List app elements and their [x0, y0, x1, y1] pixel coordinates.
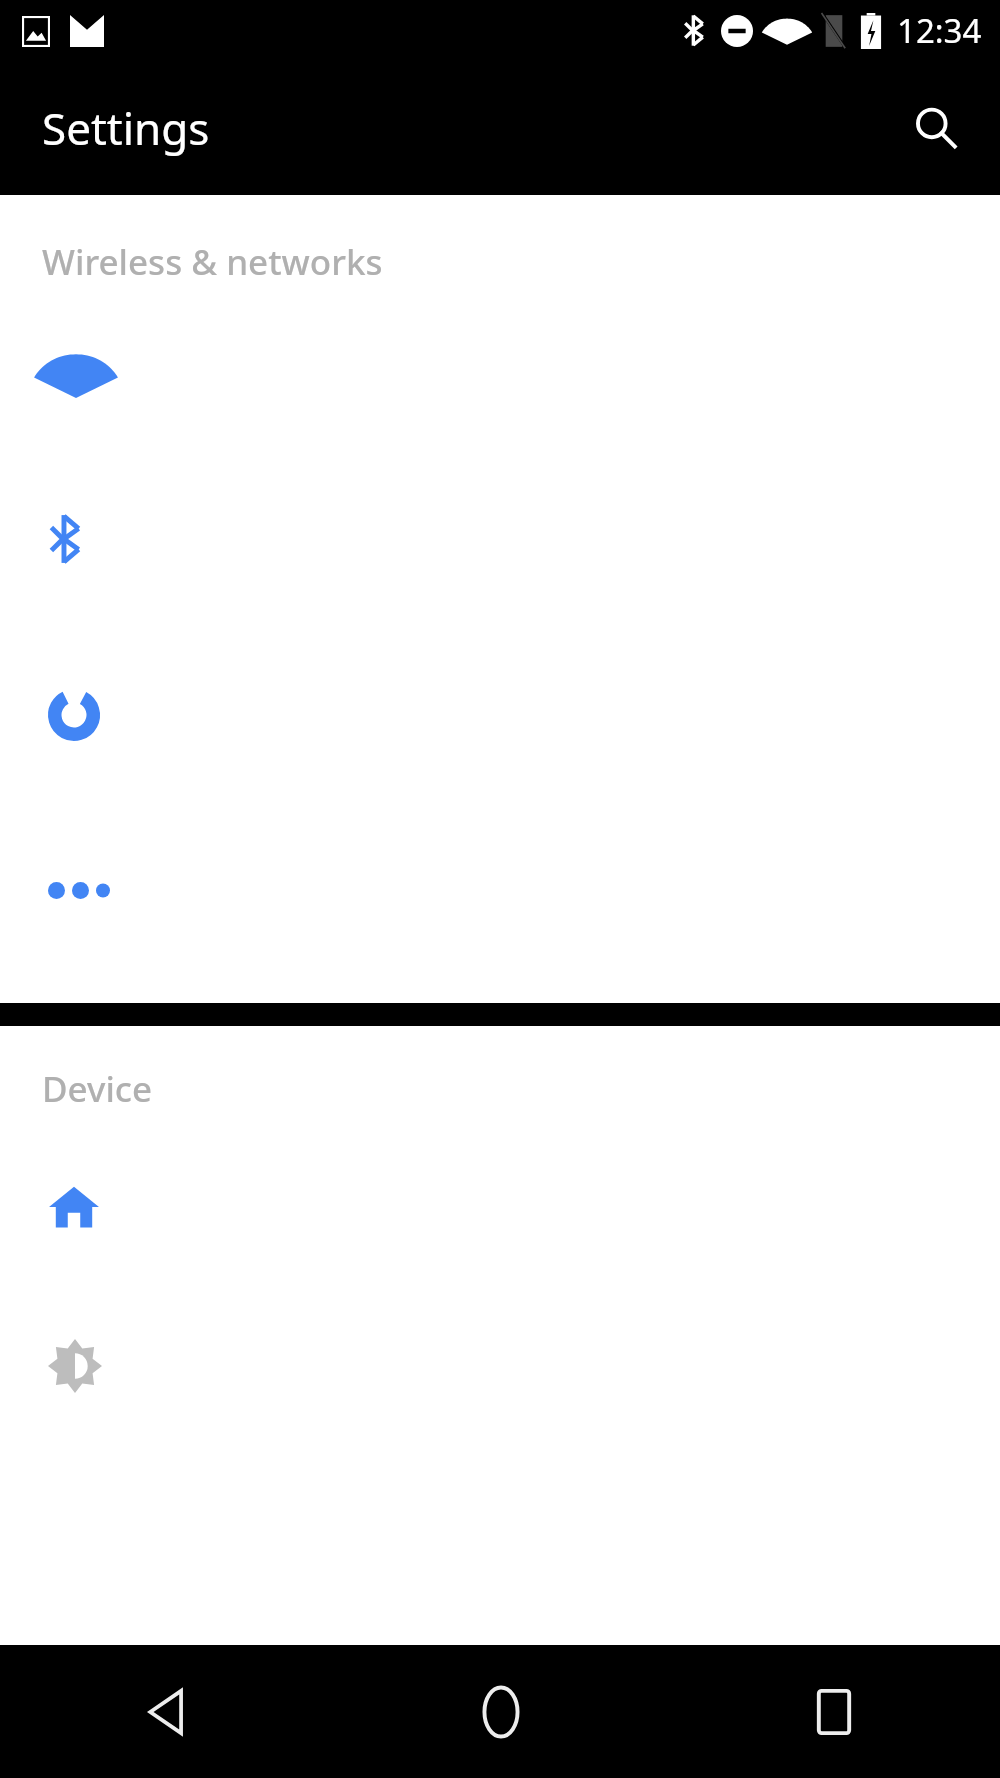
staticText: 12:34: [897, 8, 982, 53]
button[interactable]: Bluetooth: [0, 451, 1000, 627]
staticText: Wireless & networks: [42, 238, 383, 286]
button[interactable]: Wi‑Fi: [0, 299, 1000, 451]
button[interactable]: Data usage: [0, 627, 1000, 803]
button[interactable]: Search: [892, 85, 978, 171]
button[interactable]: Home: [0, 1126, 1000, 1286]
button[interactable]: Home: [334, 1645, 667, 1778]
staticText: Settings: [42, 98, 210, 158]
button[interactable]: Back: [0, 1645, 334, 1778]
button[interactable]: Display: [0, 1286, 1000, 1446]
button[interactable]: Recent apps: [667, 1645, 1000, 1778]
button[interactable]: More: [0, 803, 1000, 977]
staticText: Device: [42, 1065, 153, 1113]
